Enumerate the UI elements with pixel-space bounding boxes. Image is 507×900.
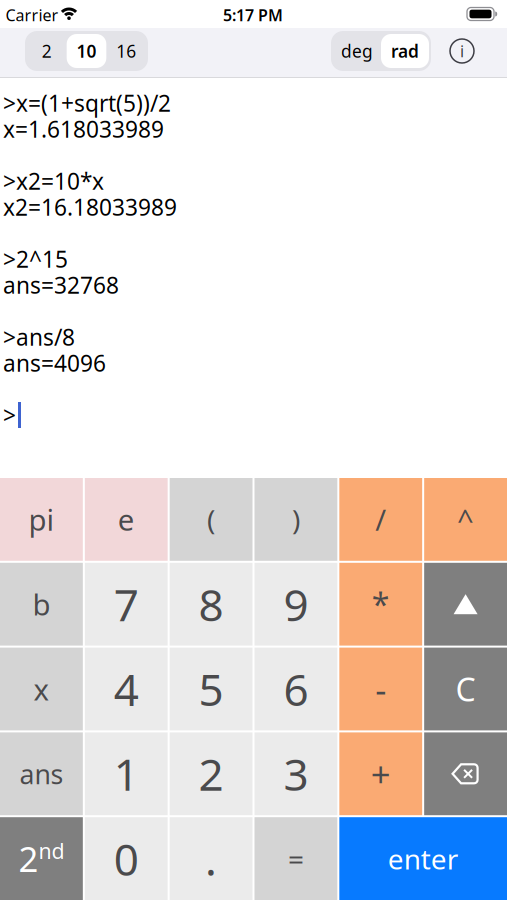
staticText: 6 (283, 660, 308, 718)
button[interactable]: 2 (170, 732, 252, 815)
staticText: = (288, 840, 304, 877)
staticText: 7 (114, 575, 139, 633)
button[interactable]: 10 (67, 31, 106, 71)
staticText: x=1.618033989 (3, 114, 164, 144)
staticText: ans=4096 (3, 348, 106, 378)
button[interactable]: 0 (85, 817, 168, 900)
button[interactable] (424, 732, 507, 815)
button[interactable]: * (339, 563, 422, 646)
staticText: pi (28, 500, 54, 539)
staticText: >x=(1+sqrt(5))/2 (3, 88, 171, 118)
button[interactable]: 2 (27, 31, 67, 71)
staticText: 5:17 PM (223, 4, 283, 26)
staticText: 4 (114, 660, 139, 718)
button[interactable]: i (449, 38, 475, 64)
button[interactable]: 16 (106, 31, 146, 71)
button[interactable]: ) (254, 478, 337, 561)
button[interactable]: 5 (170, 648, 252, 730)
button[interactable]: - (339, 648, 422, 730)
staticText: deg (341, 39, 373, 62)
button[interactable]: enter (339, 817, 507, 900)
staticText: ( (207, 501, 215, 538)
staticText: x (33, 669, 49, 708)
staticText: ans (19, 756, 63, 791)
staticText: + (371, 751, 391, 797)
staticText: rad (391, 39, 419, 62)
staticText: 2 (42, 39, 52, 62)
button[interactable]: 6 (254, 648, 337, 730)
staticText: ans=32768 (3, 270, 119, 300)
staticText: / (375, 500, 386, 539)
button[interactable]: C (424, 648, 507, 730)
button[interactable]: 4 (85, 648, 168, 730)
staticText: i (460, 40, 464, 62)
button[interactable] (424, 563, 507, 646)
staticText: 5 (199, 660, 224, 718)
button[interactable]: deg (333, 31, 381, 71)
staticText: enter (388, 840, 459, 877)
staticText: >x2=10*x (3, 166, 104, 196)
button[interactable]: / (339, 478, 422, 561)
button[interactable]: pi (0, 478, 83, 561)
staticText: 10 (76, 39, 96, 62)
staticText: >ans/8 (3, 322, 75, 352)
staticText: e (118, 500, 135, 539)
button[interactable]: b (0, 563, 83, 646)
staticText: C (456, 668, 476, 710)
button[interactable]: e (85, 478, 168, 561)
staticText: 8 (199, 575, 224, 633)
staticText: 9 (283, 575, 308, 633)
button[interactable]: = (254, 817, 337, 900)
staticText: 2 (199, 745, 224, 803)
staticText: Carrier (5, 4, 58, 26)
button[interactable]: 9 (254, 563, 337, 646)
button[interactable]: . (170, 817, 252, 900)
button[interactable]: + (339, 732, 422, 815)
button[interactable]: x (0, 648, 83, 730)
button[interactable]: 2 (0, 817, 83, 900)
staticText: 3 (283, 745, 308, 803)
staticText: b (32, 585, 50, 624)
staticText: nd (38, 837, 64, 865)
staticText: 1 (114, 745, 139, 803)
staticText: - (375, 666, 386, 712)
staticText: * (372, 583, 390, 625)
staticText: . (205, 829, 217, 888)
staticText: 16 (116, 39, 136, 62)
staticText: x2=16.18033989 (3, 192, 177, 222)
staticText: 2 (18, 836, 38, 882)
staticText: ) (292, 501, 300, 538)
staticText: >2^15 (3, 244, 68, 274)
button[interactable]: 7 (85, 563, 168, 646)
button[interactable]: 8 (170, 563, 252, 646)
button[interactable]: 1 (85, 732, 168, 815)
button[interactable]: ^ (424, 478, 507, 561)
button[interactable]: ans (0, 732, 83, 815)
button[interactable]: ( (170, 478, 252, 561)
staticText: 0 (114, 829, 139, 888)
staticText: > (3, 400, 16, 430)
button[interactable]: rad (381, 31, 429, 71)
button[interactable]: 3 (254, 732, 337, 815)
staticText: ^ (457, 500, 474, 539)
